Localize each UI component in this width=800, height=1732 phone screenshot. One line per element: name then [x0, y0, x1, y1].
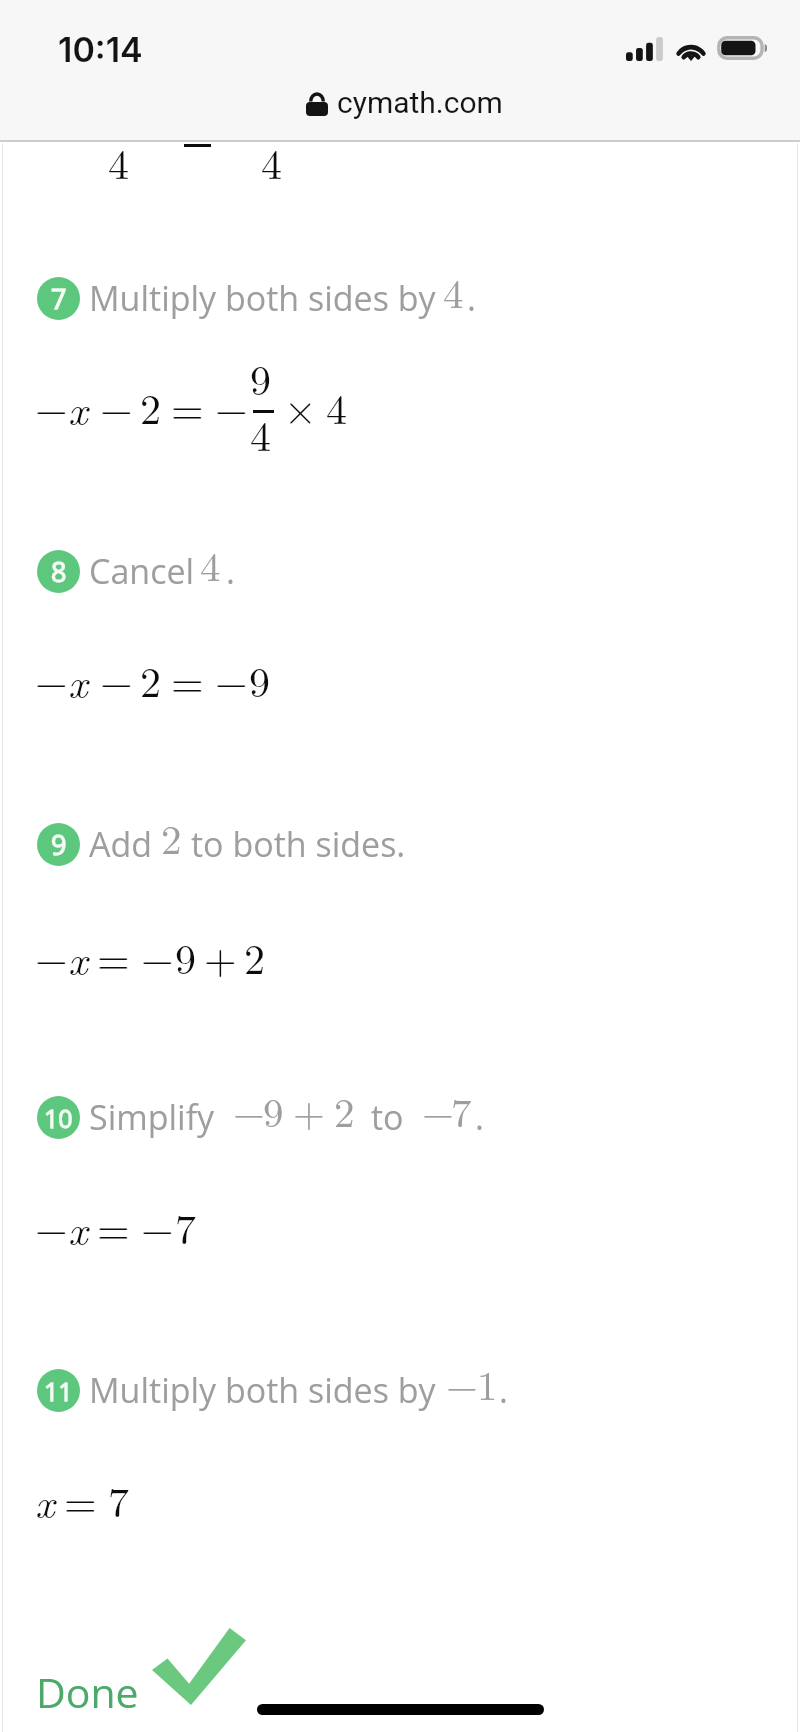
staticText: Simplify — [89, 1094, 215, 1140]
staticText: x — [68, 651, 88, 710]
staticText: 4 — [250, 404, 271, 459]
staticText: 10 — [44, 1101, 73, 1135]
staticText: 7 — [451, 1081, 472, 1139]
staticText: x — [35, 1471, 55, 1530]
button[interactable]: 10 — [0, 1075, 800, 1161]
staticText: − — [141, 1197, 174, 1257]
staticText: . — [499, 1367, 508, 1413]
staticText: 2 — [140, 650, 162, 710]
staticText: = — [97, 927, 130, 987]
button[interactable]: 8 — [0, 529, 800, 615]
staticText: Done — [36, 1664, 139, 1720]
staticText: 2 — [334, 1081, 355, 1139]
staticText: − — [35, 1197, 68, 1257]
staticText: 7 — [175, 1197, 197, 1257]
staticText: 4 — [261, 132, 283, 192]
staticText: = — [97, 1197, 130, 1257]
staticText: Multiply both sides by — [89, 1367, 436, 1413]
staticText: 4 — [200, 535, 221, 593]
staticText: 9 — [51, 826, 67, 863]
staticText: × — [284, 377, 317, 437]
staticText: to — [371, 1094, 404, 1140]
staticText: 7 — [51, 280, 67, 317]
staticText: − — [141, 927, 174, 987]
staticText: = — [171, 650, 204, 710]
staticText: . — [467, 275, 476, 321]
button[interactable]: 7 — [0, 256, 800, 342]
staticText: . — [475, 1094, 484, 1140]
button[interactable]: Secure connection — [4, 72, 800, 132]
staticText: 2 — [140, 377, 162, 437]
button[interactable]: Done — [30, 1622, 258, 1722]
staticText: 9 — [175, 927, 197, 987]
staticText: . — [226, 548, 235, 594]
staticText: 1 — [477, 1354, 498, 1412]
staticText: − — [35, 927, 68, 987]
staticText: x — [68, 378, 88, 437]
staticText: = — [171, 377, 204, 437]
staticText: 2 — [161, 808, 182, 866]
button[interactable]: 9 — [0, 802, 800, 888]
staticText: Cancel — [89, 548, 195, 594]
staticText: = — [64, 1470, 97, 1530]
staticText: Multiply both sides by — [89, 275, 436, 321]
staticText: − — [100, 377, 133, 437]
staticText: − — [100, 650, 133, 710]
staticText: 10:14 — [58, 29, 143, 70]
staticText: 4 — [108, 132, 130, 192]
staticText: to both sides. — [191, 821, 406, 867]
staticText: Add — [89, 821, 153, 867]
staticText: 9 — [250, 348, 271, 403]
staticText: 9 — [263, 1081, 284, 1139]
staticText: 9 — [249, 650, 271, 710]
staticText: 4 — [326, 377, 348, 437]
staticText: 7 — [108, 1470, 130, 1530]
staticText: cymath.com — [337, 85, 503, 120]
staticText: − — [35, 377, 68, 437]
staticText: 2 — [244, 927, 266, 987]
button[interactable]: 11 — [0, 1348, 800, 1434]
staticText: x — [68, 1198, 88, 1257]
staticText: − — [446, 1354, 478, 1412]
other: Secure connection — [306, 92, 328, 116]
staticText: 4 — [443, 262, 464, 320]
staticText: − — [215, 377, 248, 437]
staticText: − — [35, 650, 68, 710]
staticText: x — [68, 928, 88, 987]
staticText: − — [215, 650, 248, 710]
staticText: + — [204, 927, 237, 987]
staticText: 8 — [51, 553, 67, 590]
staticText: 11 — [44, 1374, 73, 1408]
staticText: + — [293, 1081, 325, 1139]
staticText: − — [233, 1081, 265, 1139]
staticText: − — [422, 1081, 454, 1139]
